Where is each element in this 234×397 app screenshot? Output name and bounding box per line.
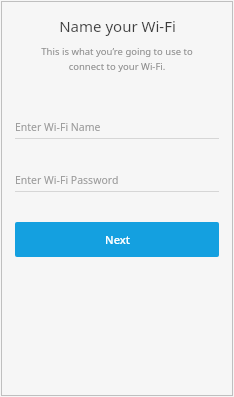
staticText: Enter Wi-Fi Name xyxy=(15,120,101,134)
staticText: This is what you’re going to use to conn… xyxy=(23,45,211,73)
staticText: Next xyxy=(105,232,130,247)
button[interactable]: Enter Wi-Fi Password xyxy=(15,171,219,192)
button[interactable]: Next xyxy=(15,222,219,257)
staticText: Enter Wi-Fi Password xyxy=(15,173,119,187)
staticText: Name your Wi-Fi xyxy=(59,16,176,36)
button[interactable]: Enter Wi-Fi Name xyxy=(15,118,219,139)
